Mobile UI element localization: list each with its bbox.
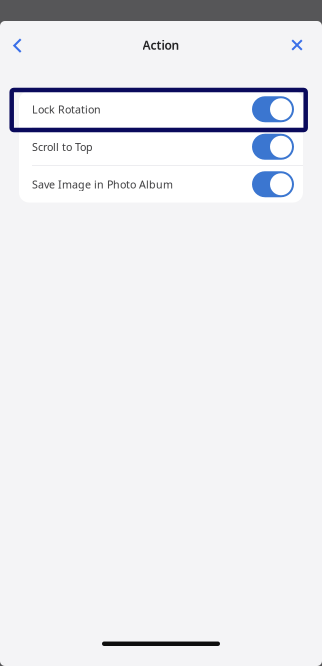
- staticText: Lock Rotation: [32, 102, 101, 116]
- button[interactable]: Close: [282, 28, 312, 62]
- button[interactable]: Back: [2, 28, 32, 62]
- button[interactable]: Save Image in Photo Album: [19, 166, 303, 202]
- staticText: Action: [142, 37, 179, 53]
- button[interactable]: Scroll to Top: [19, 128, 303, 165]
- button[interactable]: Home: [102, 632, 220, 666]
- staticText: Save Image in Photo Album: [32, 177, 173, 191]
- staticText: Scroll to Top: [32, 140, 93, 154]
- button[interactable]: Lock Rotation: [19, 91, 303, 127]
